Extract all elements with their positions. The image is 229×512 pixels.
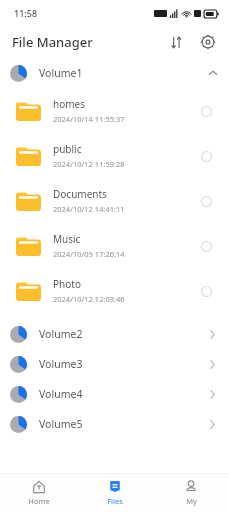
button[interactable]: Home bbox=[0, 474, 77, 512]
button[interactable]: Volume1 bbox=[0, 58, 229, 88]
button[interactable]: Select Documents bbox=[195, 190, 217, 212]
button[interactable]: public bbox=[0, 133, 229, 178]
staticText: public bbox=[53, 142, 82, 156]
staticText: Volume5 bbox=[39, 417, 83, 431]
staticText: File Manager bbox=[12, 33, 93, 51]
staticText: Music bbox=[53, 232, 81, 246]
staticText: Home bbox=[28, 496, 50, 506]
staticText: Photo bbox=[53, 277, 81, 291]
button[interactable]: Settings bbox=[197, 31, 219, 53]
staticText: 2024/10/12 14:41:11 bbox=[53, 204, 125, 214]
button[interactable]: Select Music bbox=[195, 235, 217, 257]
staticText: 2024/10/14 11:55:37 bbox=[53, 114, 125, 124]
button[interactable]: Photo bbox=[0, 268, 229, 313]
staticText: Volume2 bbox=[39, 327, 83, 341]
button[interactable]: Volume2 bbox=[0, 319, 229, 349]
staticText: 2024/10/12 11:59:28 bbox=[53, 159, 125, 169]
button[interactable]: Volume3 bbox=[0, 349, 229, 379]
staticText: Volume3 bbox=[39, 357, 83, 371]
staticText: Volume4 bbox=[39, 387, 83, 401]
staticText: Files bbox=[107, 496, 123, 506]
staticText: homes bbox=[53, 97, 86, 111]
button[interactable]: Sort bbox=[165, 31, 187, 53]
button[interactable]: Select Photo bbox=[195, 280, 217, 302]
button[interactable]: Files bbox=[77, 474, 153, 512]
staticText: 2024/10/12 12:03:46 bbox=[53, 294, 125, 304]
button[interactable]: Volume5 bbox=[0, 409, 229, 439]
button[interactable]: Volume4 bbox=[0, 379, 229, 409]
button[interactable]: Documents bbox=[0, 178, 229, 223]
button[interactable]: Music bbox=[0, 223, 229, 268]
button[interactable]: Select public bbox=[195, 145, 217, 167]
staticText: 2024/10/09 17:26:14 bbox=[53, 249, 125, 259]
button[interactable]: homes bbox=[0, 88, 229, 133]
staticText: Volume1 bbox=[39, 66, 83, 80]
button[interactable]: Select homes bbox=[195, 100, 217, 122]
button[interactable]: My bbox=[153, 474, 229, 512]
staticText: My bbox=[186, 496, 197, 506]
staticText: 11:58 bbox=[14, 7, 38, 19]
staticText: Documents bbox=[53, 187, 107, 201]
